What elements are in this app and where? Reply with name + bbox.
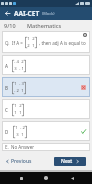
staticText: D (5, 129, 9, 135)
staticText: 1 (27, 36, 30, 42)
button[interactable]: Bookmark question (82, 32, 88, 38)
staticText: (Mock) (42, 11, 55, 16)
staticText: If A = (12, 40, 23, 46)
staticText: A (5, 63, 8, 69)
staticText: Next (61, 158, 73, 165)
staticText: 2 (21, 59, 24, 65)
staticText: - 2 (20, 125, 25, 131)
button[interactable]: Back (67, 173, 77, 183)
staticText: 1 (15, 125, 18, 131)
staticText: , then adj A is equal to (39, 40, 86, 46)
staticText: 1 (21, 132, 24, 138)
button[interactable]: E. (2, 143, 90, 151)
button[interactable]: Recents (16, 173, 26, 183)
button[interactable]: Next (54, 157, 86, 166)
staticText: Previous (11, 158, 32, 165)
staticText: 2 (19, 103, 22, 109)
staticText: 1 (14, 110, 17, 116)
staticText: - 2 (14, 88, 19, 94)
staticText: 1 (14, 103, 17, 109)
button[interactable]: C (2, 99, 90, 119)
staticText: AAI-CET (14, 9, 40, 18)
staticText: 1 (21, 88, 24, 94)
staticText: C (5, 107, 8, 113)
staticText: 1 (32, 43, 35, 49)
staticText: Mathematics (27, 22, 62, 29)
staticText: 2 (27, 43, 30, 49)
staticText: E. (5, 144, 9, 150)
staticText: 9/10 (4, 22, 16, 29)
staticText: 1 (19, 110, 22, 116)
button[interactable]: Home (41, 173, 51, 183)
staticText: - 1 (19, 66, 24, 72)
button[interactable]: B (2, 77, 90, 97)
staticText: - 4 (14, 59, 19, 65)
staticText: B (5, 85, 8, 91)
button[interactable]: Back (3, 9, 12, 18)
staticText: Q. (5, 40, 10, 46)
staticText: 3 (14, 66, 17, 72)
button[interactable]: D (2, 121, 90, 141)
staticText: 2 (32, 36, 35, 42)
staticText: No Answer (11, 144, 35, 150)
staticText: - 3 (19, 81, 24, 87)
button[interactable]: Previous (4, 156, 34, 167)
staticText: 3 (16, 132, 19, 138)
staticText: 1 (14, 81, 17, 87)
button[interactable]: A (2, 55, 90, 75)
